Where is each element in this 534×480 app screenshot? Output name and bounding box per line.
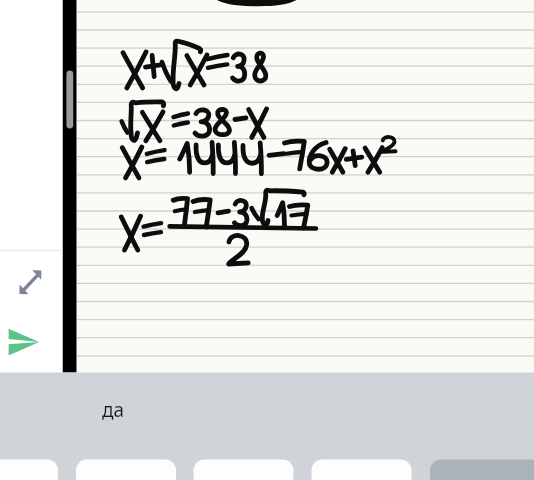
button[interactable]: Expand image: [16, 264, 46, 298]
button[interactable]: да: [92, 386, 152, 430]
staticText: да: [102, 397, 125, 423]
button[interactable]: Send: [4, 324, 46, 360]
